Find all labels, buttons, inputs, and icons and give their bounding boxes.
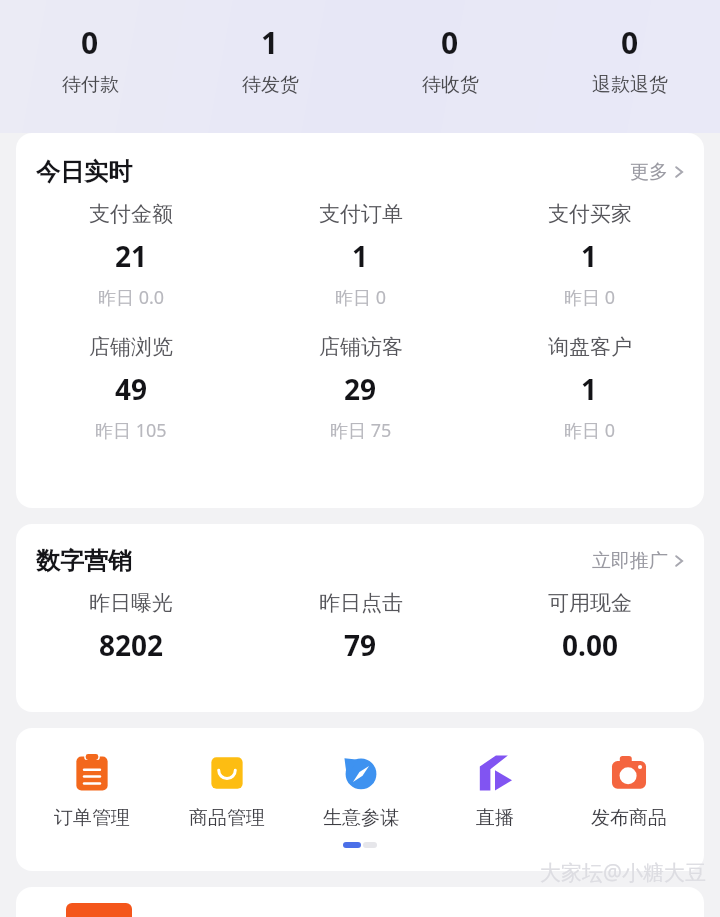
staticText: 生意参谋 <box>323 806 399 830</box>
staticText: 待付款 <box>62 73 119 97</box>
button[interactable]: 商品管理 <box>159 750 294 830</box>
staticText: 直播 <box>476 806 514 830</box>
staticText: 8202 <box>99 626 164 664</box>
staticText: 店铺访客 <box>319 334 403 360</box>
button[interactable]: 询盘客户 <box>475 334 704 443</box>
button[interactable]: 1 <box>180 0 360 97</box>
staticText: 昨日 0 <box>335 285 386 310</box>
staticText: 今日实时 <box>36 157 132 187</box>
other: 生意参谋 <box>338 750 384 796</box>
staticText: 店铺浏览 <box>89 334 173 360</box>
button[interactable]: 更多 <box>630 160 686 184</box>
button[interactable]: 支付订单 <box>246 201 475 310</box>
button[interactable]: 店铺浏览 <box>16 334 246 443</box>
staticText: 待发货 <box>242 73 299 97</box>
staticText: 0.00 <box>562 626 618 664</box>
staticText: 数字营销 <box>36 546 132 576</box>
staticText: 昨日 75 <box>330 418 392 443</box>
button[interactable]: 0 <box>540 0 720 97</box>
staticText: 昨日 0.0 <box>98 285 165 310</box>
staticText: 更多 <box>630 160 668 184</box>
button[interactable]: 可用现金 <box>475 590 704 664</box>
staticText: 发布商品 <box>591 806 667 830</box>
staticText: 大家坛@小糖大豆 <box>540 858 706 887</box>
staticText: 昨日 0 <box>564 418 615 443</box>
button[interactable]: 订单管理 <box>24 750 159 830</box>
staticText: 昨日 0 <box>564 285 615 310</box>
staticText: 询盘客户 <box>548 334 632 360</box>
button[interactable]: 发布商品 <box>562 750 696 830</box>
staticText: 退款退货 <box>592 73 668 97</box>
staticText: 0 <box>81 22 99 63</box>
staticText: 29 <box>344 370 377 408</box>
other: 发布商品 <box>606 750 652 796</box>
other: 直播 <box>472 750 518 796</box>
staticText: 1 <box>581 370 598 408</box>
staticText: 支付买家 <box>548 201 632 227</box>
staticText: 1 <box>352 237 369 275</box>
staticText: 昨日 105 <box>95 418 167 443</box>
staticText: 0 <box>441 22 459 63</box>
staticText: 49 <box>115 370 148 408</box>
staticText: 昨日曝光 <box>89 590 173 616</box>
button[interactable]: 支付金额 <box>16 201 246 310</box>
button[interactable]: 生意参谋 <box>294 750 428 830</box>
staticText: 79 <box>344 626 377 664</box>
button[interactable]: 0 <box>360 0 540 97</box>
button[interactable]: 昨日曝光 <box>16 590 246 664</box>
staticText: 可用现金 <box>548 590 632 616</box>
staticText: 21 <box>115 237 148 275</box>
staticText: 支付金额 <box>89 201 173 227</box>
staticText: 订单管理 <box>54 806 130 830</box>
button[interactable]: 昨日点击 <box>246 590 475 664</box>
button[interactable]: 立即推广 <box>592 549 686 573</box>
staticText: 0 <box>621 22 639 63</box>
staticText: 1 <box>261 22 279 63</box>
other: 订单管理 <box>69 750 115 796</box>
staticText: 立即推广 <box>592 549 668 573</box>
staticText: 待收货 <box>422 73 479 97</box>
button[interactable]: 直播 <box>428 750 562 830</box>
button[interactable]: 支付买家 <box>475 201 704 310</box>
button[interactable]: 0 <box>0 0 180 97</box>
button[interactable]: 店铺访客 <box>246 334 475 443</box>
other: 商品管理 <box>204 750 250 796</box>
staticText: 商品管理 <box>189 806 265 830</box>
staticText: 昨日点击 <box>319 590 403 616</box>
staticText: 支付订单 <box>319 201 403 227</box>
staticText: 1 <box>581 237 598 275</box>
